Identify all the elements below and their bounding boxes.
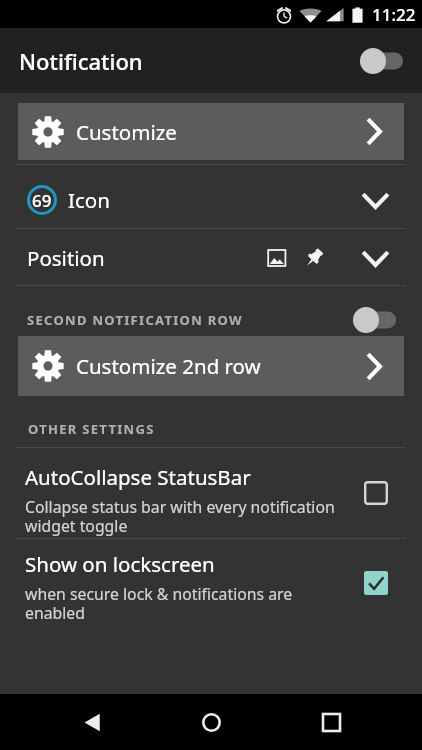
button[interactable]: Enable second notification row bbox=[350, 300, 398, 340]
staticText: Notification bbox=[19, 46, 143, 76]
staticText: 11:22 bbox=[372, 3, 416, 26]
button[interactable]: Customize 2nd row bbox=[18, 336, 404, 396]
staticText: SECOND NOTIFICATION ROW bbox=[27, 311, 243, 329]
button[interactable]: Position bbox=[0, 230, 422, 286]
button[interactable]: Back bbox=[64, 694, 120, 750]
button[interactable]: 69 bbox=[0, 172, 422, 228]
button[interactable]: Show on lockscreen bbox=[0, 545, 422, 625]
staticText: OTHER SETTINGS bbox=[28, 420, 155, 438]
button[interactable]: Recent apps bbox=[303, 694, 359, 750]
staticText: Collapse status bar with every notificat… bbox=[25, 496, 336, 536]
staticText: Icon bbox=[68, 186, 110, 214]
staticText: Position bbox=[27, 244, 105, 272]
button[interactable]: Unchecked bbox=[356, 473, 396, 513]
button[interactable]: Checked bbox=[356, 563, 396, 603]
staticText: 69 bbox=[32, 189, 52, 212]
staticText: when secure lock & notifications are ena… bbox=[25, 583, 336, 623]
staticText: Show on lockscreen bbox=[25, 550, 215, 578]
button[interactable]: Home bbox=[183, 694, 239, 750]
button[interactable]: Enable notification bbox=[355, 39, 408, 83]
button[interactable]: AutoCollapse StatusBar bbox=[0, 458, 422, 538]
staticText: AutoCollapse StatusBar bbox=[25, 463, 251, 491]
staticText: Customize bbox=[76, 118, 177, 146]
staticText: Customize 2nd row bbox=[76, 352, 261, 380]
button[interactable]: Customize bbox=[18, 103, 404, 160]
